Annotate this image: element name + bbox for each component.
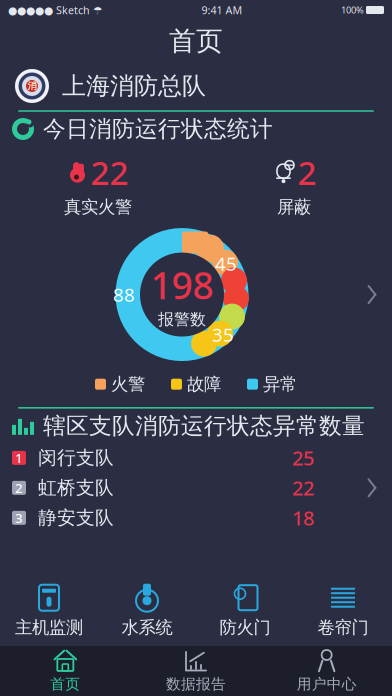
staticText: 1	[15, 449, 23, 467]
staticText: 报警数	[158, 309, 206, 329]
button[interactable]: 今日消防运行状态统计	[0, 112, 392, 407]
staticText: 今日消防运行状态统计	[43, 115, 273, 143]
staticText: ●●●●● Sketch ☂	[8, 3, 103, 17]
staticText: 虹桥支队	[38, 476, 114, 499]
staticText: 9:41 AM	[201, 3, 242, 17]
button[interactable]: 卷帘门	[294, 584, 392, 638]
staticText: 100%	[341, 4, 364, 16]
staticText: 异常	[263, 374, 297, 395]
staticText: 2	[297, 150, 316, 194]
staticText: 2	[15, 479, 23, 497]
button[interactable]: 消	[0, 62, 392, 110]
staticText: 18	[292, 505, 314, 531]
staticText: 真实火警	[64, 196, 132, 218]
button[interactable]: 1	[0, 443, 392, 473]
staticText: 火警	[111, 374, 145, 395]
staticText: 上海消防总队	[62, 71, 206, 101]
staticText: 辖区支队消防运行状态异常数量	[43, 412, 365, 440]
staticText: 静安支队	[38, 506, 114, 529]
button[interactable]: 水系统	[98, 584, 196, 638]
button[interactable]: 首页	[0, 645, 131, 696]
staticText: 故障	[187, 374, 221, 395]
staticText: 防火门	[219, 617, 270, 638]
button[interactable]: 辖区支队消防运行状态异常数量	[0, 409, 392, 443]
staticText: 消	[27, 80, 36, 92]
staticText: 首页	[50, 675, 80, 693]
button[interactable]: 数据报告	[131, 645, 261, 696]
staticText: 45	[215, 251, 237, 276]
staticText: 88	[113, 282, 135, 307]
staticText: 22	[292, 475, 314, 501]
staticText: 屏蔽	[277, 196, 311, 218]
staticText: 卷帘门	[317, 617, 368, 638]
staticText: 用户中心	[297, 675, 357, 693]
button[interactable]: 主机监测	[0, 584, 98, 638]
staticText: 闵行支队	[38, 446, 114, 469]
staticText: 主机监测	[15, 617, 83, 638]
button[interactable]: 3	[0, 503, 392, 533]
staticText: 首页	[169, 25, 223, 57]
staticText: 水系统	[121, 617, 172, 638]
staticText: 25	[292, 445, 314, 471]
staticText: 3	[15, 509, 23, 527]
staticText: 数据报告	[166, 675, 226, 693]
button[interactable]: 查看更多	[364, 475, 380, 501]
button[interactable]: 防火门	[196, 584, 294, 638]
button[interactable]: 2	[0, 473, 392, 503]
staticText: 22	[90, 150, 128, 194]
staticText: 35	[212, 322, 234, 347]
button[interactable]: 用户中心	[261, 645, 392, 696]
staticText: 198	[150, 260, 213, 309]
